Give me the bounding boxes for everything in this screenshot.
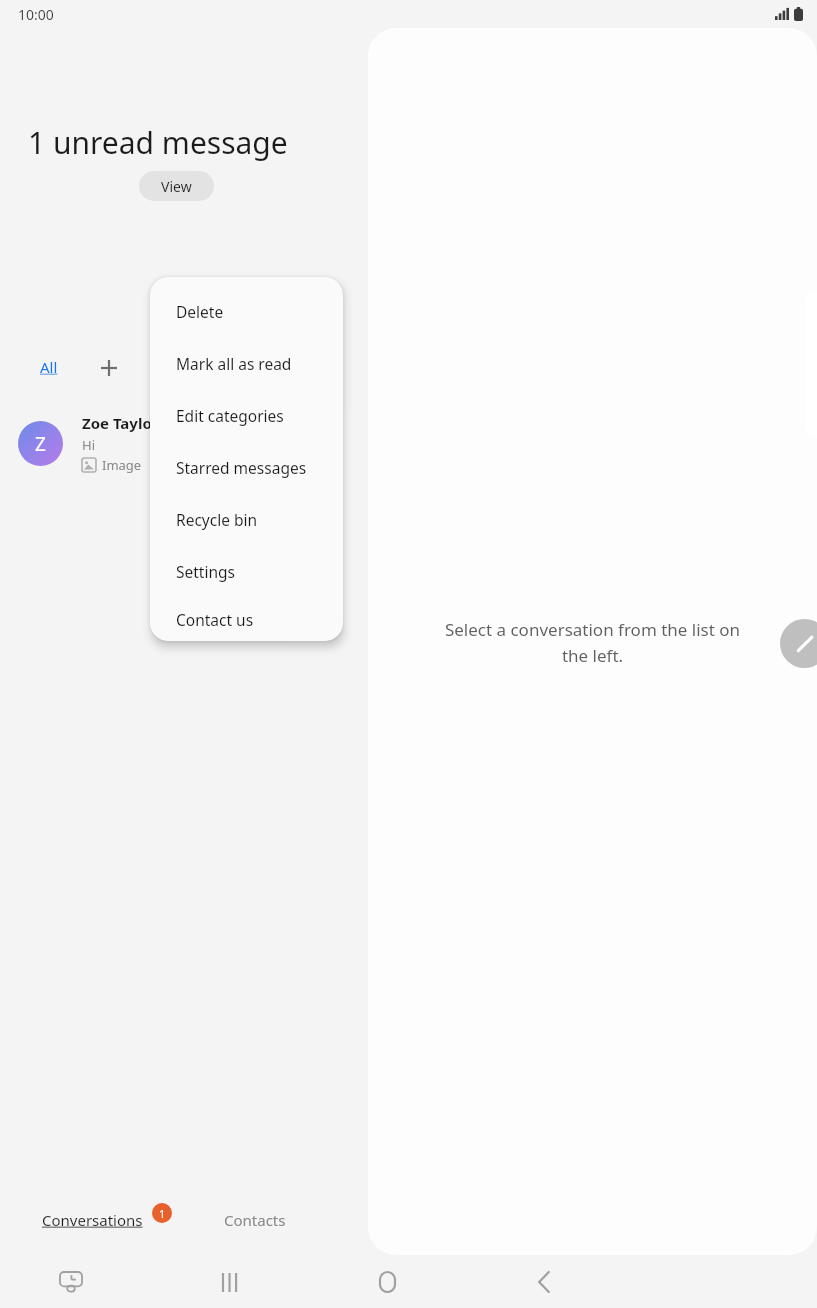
staticText: Starred messages	[176, 457, 307, 478]
staticText: Hi	[82, 436, 95, 454]
staticText: 1	[159, 1206, 166, 1221]
button[interactable]: Delete	[150, 285, 343, 337]
staticText: Delete	[176, 301, 224, 322]
button[interactable]: Conversations	[38, 1207, 147, 1233]
button[interactable]: Z	[0, 412, 368, 474]
button[interactable]: Compose new message	[780, 619, 817, 668]
staticText: Z	[35, 431, 46, 457]
staticText: Conversations	[42, 1210, 143, 1230]
button[interactable]: Add category	[94, 353, 124, 383]
button[interactable]: Contacts	[220, 1207, 290, 1233]
button[interactable]: Starred messages	[150, 441, 343, 493]
staticText: View	[161, 177, 192, 196]
button[interactable]: Hide keyboard	[48, 1259, 94, 1305]
button[interactable]: Edit categories	[150, 389, 343, 441]
button[interactable]: All	[34, 355, 64, 379]
button[interactable]: Contact us	[150, 597, 343, 641]
staticText: Contacts	[224, 1210, 286, 1230]
staticText: Mark all as read	[176, 353, 292, 374]
staticText: Select a conversation from the list on t…	[430, 618, 755, 667]
staticText: 10:00	[18, 5, 54, 24]
staticText: Image	[102, 456, 142, 474]
staticText: Edit categories	[176, 405, 284, 426]
staticText: Zoe Taylor	[82, 413, 159, 433]
staticText: All	[40, 357, 58, 377]
button[interactable]: Home	[364, 1259, 410, 1305]
button[interactable]: Mark all as read	[150, 337, 343, 389]
staticText: 1 unread message	[28, 122, 288, 163]
staticText: Contact us	[176, 609, 254, 630]
button[interactable]: View	[139, 171, 214, 201]
button[interactable]: Recent apps	[207, 1259, 253, 1305]
staticText: Settings	[176, 561, 235, 582]
button[interactable]: Recycle bin	[150, 493, 343, 545]
staticText: Recycle bin	[176, 509, 258, 530]
button[interactable]: Settings	[150, 545, 343, 597]
button[interactable]: Back	[521, 1259, 567, 1305]
